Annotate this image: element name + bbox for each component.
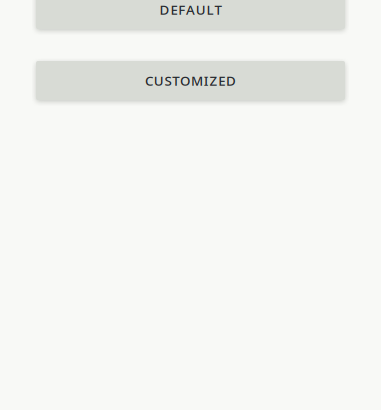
staticText: CUSTOMIZED <box>145 72 236 89</box>
button[interactable]: DEFAULT <box>36 0 345 29</box>
staticText: DEFAULT <box>160 1 221 18</box>
button[interactable]: CUSTOMIZED <box>36 61 345 100</box>
